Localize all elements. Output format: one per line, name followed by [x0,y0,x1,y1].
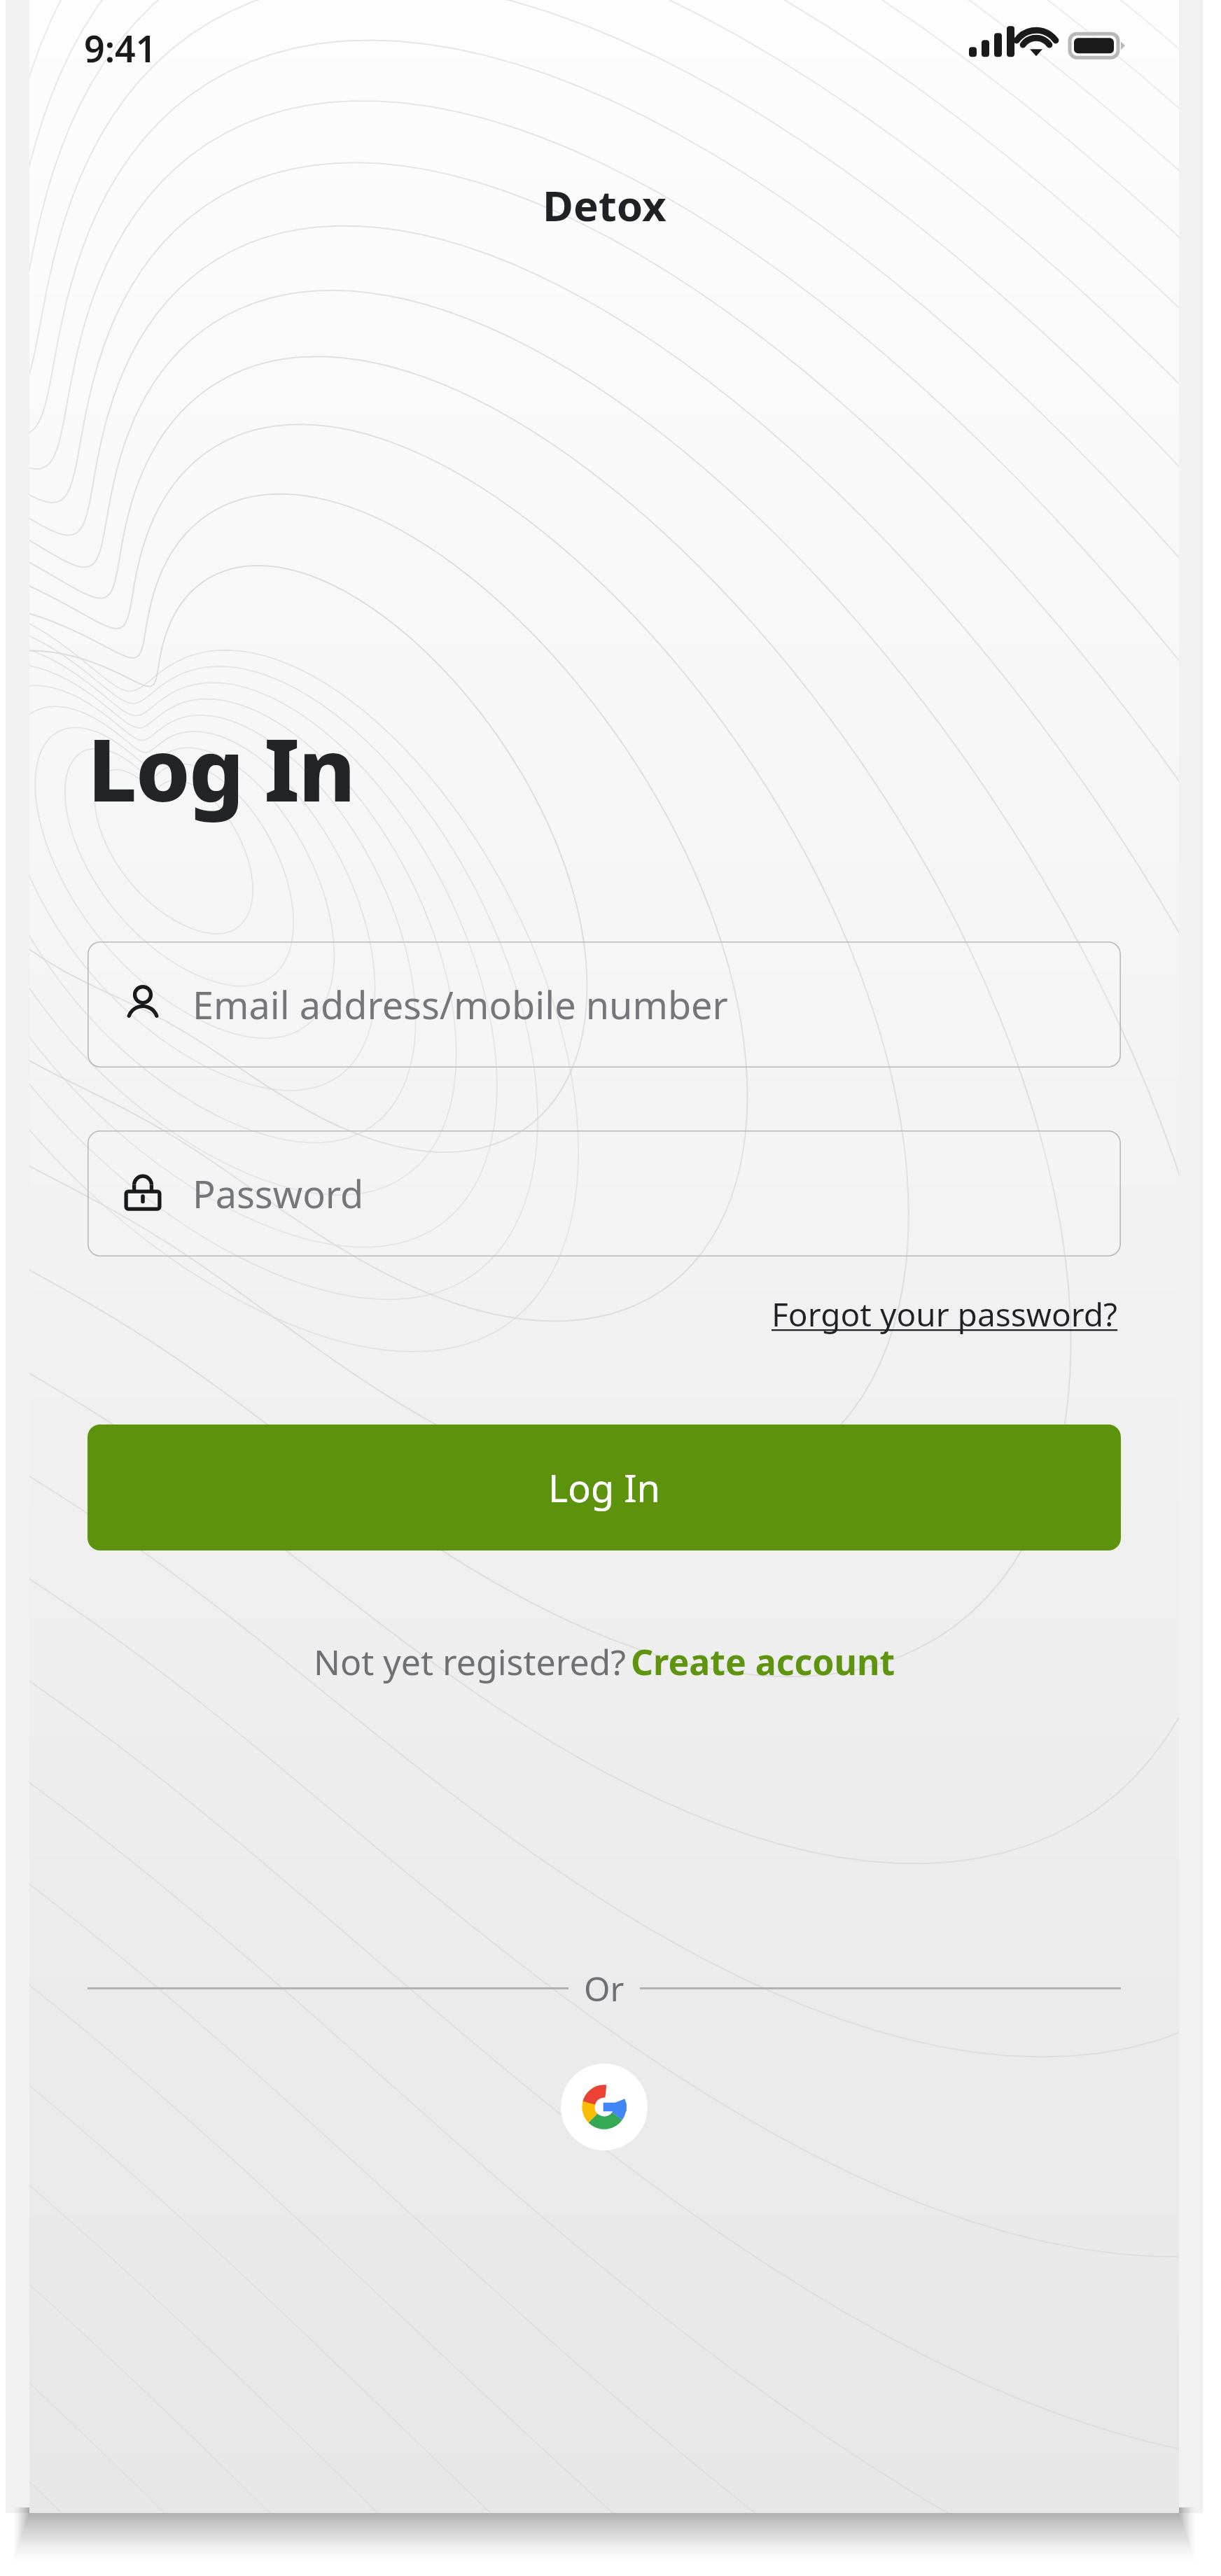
staticText: Password [193,1168,364,1219]
staticText: Forgot your password? [772,1292,1118,1336]
button[interactable]: Sign in with Google [561,2064,648,2150]
staticText: Or [584,1966,625,2011]
staticText: Email address/mobile number [193,979,728,1030]
staticText: Log In [548,1462,660,1513]
button[interactable]: Password [88,1130,1121,1256]
button[interactable]: Log In [88,1424,1121,1550]
button[interactable]: Forgot your password? [769,1288,1121,1340]
button[interactable]: Email address/mobile number [88,941,1121,1067]
staticText: Not yet registered? [314,1638,627,1686]
staticText: 9:41 [84,23,157,73]
staticText: Detox [543,176,667,234]
button[interactable]: Create account [627,1638,895,1686]
staticText: Log In [88,708,354,827]
staticText: Create account [631,1638,895,1686]
